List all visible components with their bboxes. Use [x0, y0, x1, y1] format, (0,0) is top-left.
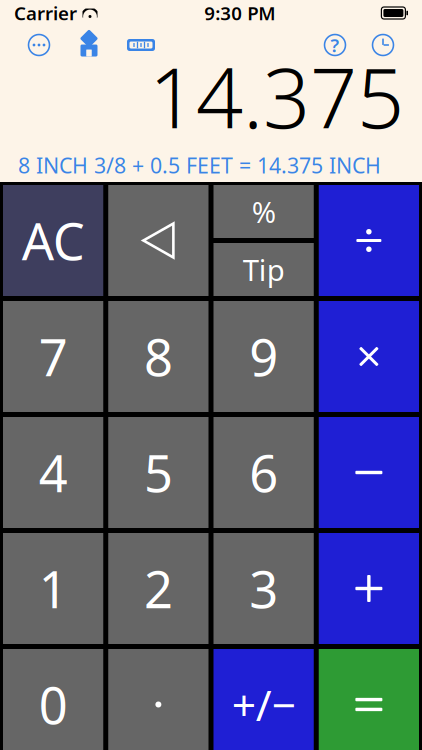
button[interactable]: History [370, 32, 396, 58]
button[interactable]: Divide [319, 185, 419, 296]
staticText: 3 [249, 555, 278, 622]
button[interactable]: Add [319, 533, 419, 644]
staticText: +/− [232, 676, 296, 733]
button[interactable]: 9 [213, 301, 314, 412]
button[interactable]: 2 [108, 533, 208, 644]
button[interactable]: Units [126, 37, 156, 53]
button[interactable]: Subtract [319, 417, 419, 528]
staticText: % [252, 192, 276, 231]
button[interactable]: +/− [213, 649, 314, 750]
staticText: 8 INCH 3/8 + 0.5 FEET = 14.375 INCH [18, 151, 381, 179]
button[interactable]: % [213, 185, 314, 238]
button[interactable]: 3 [213, 533, 314, 644]
button[interactable]: 8 [108, 301, 208, 412]
staticText: Tip [243, 250, 285, 289]
staticText: 6 [249, 439, 278, 506]
staticText: INCH [324, 182, 380, 213]
button[interactable]: 4 [3, 417, 103, 528]
button[interactable]: Home [76, 33, 102, 57]
staticText: 5 [144, 439, 173, 506]
button[interactable]: AC [3, 185, 103, 296]
staticText: 2 [144, 555, 173, 622]
staticText: 8 [144, 323, 173, 390]
staticText: Carrier [14, 1, 77, 25]
staticText: 1 [39, 555, 68, 622]
button[interactable]: 6 [213, 417, 314, 528]
button[interactable]: 5 [108, 417, 208, 528]
button[interactable]: 1 [3, 533, 103, 644]
button[interactable]: 7 [3, 301, 103, 412]
staticText: 14.375 [149, 41, 404, 151]
button[interactable]: 0 [3, 649, 103, 750]
button[interactable]: Delete [108, 185, 208, 296]
button[interactable]: More options [26, 32, 52, 58]
staticText: 9 [249, 323, 278, 390]
staticText: 7 [39, 323, 68, 390]
button[interactable]: Tip [213, 243, 314, 296]
staticText: 0 [39, 671, 68, 738]
staticText: ? [330, 33, 339, 57]
button[interactable]: Multiply [319, 301, 419, 412]
staticText: 9:30 PM [204, 1, 275, 25]
button[interactable]: Decimal point [108, 649, 208, 750]
button[interactable]: Equals [319, 649, 419, 750]
staticText: AC [22, 207, 85, 274]
staticText: 4 [39, 439, 68, 506]
button[interactable]: Help [322, 32, 348, 58]
